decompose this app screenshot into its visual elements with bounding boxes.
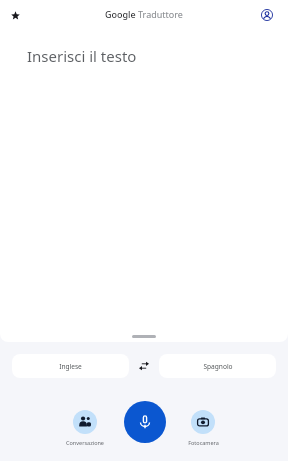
button[interactable]: Account (255, 3, 279, 27)
button[interactable]: Swap languages (129, 354, 159, 378)
button[interactable]: Spagnolo (159, 354, 276, 378)
button[interactable]: Saved translations (3, 3, 27, 27)
button[interactable]: Inserisci il testo (0, 30, 288, 330)
button[interactable]: Conversazione (55, 410, 115, 446)
staticText: Fotocamera (188, 439, 219, 446)
button[interactable]: Speak (124, 401, 166, 443)
staticText: Conversazione (66, 439, 104, 446)
staticText: Inglese (59, 362, 82, 371)
staticText: Spagnolo (203, 362, 233, 371)
button[interactable]: Fotocamera (173, 410, 233, 446)
staticText: Inserisci il testo (27, 46, 137, 66)
button[interactable]: Inglese (12, 354, 129, 378)
staticText: Google Traduttore (105, 8, 183, 20)
